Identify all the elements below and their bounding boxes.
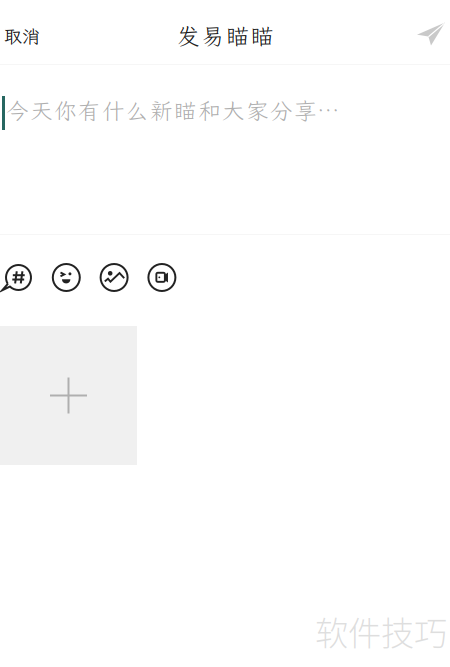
button[interactable]: Topic — [5, 264, 32, 291]
button[interactable]: Video — [148, 264, 175, 291]
staticText: 取消 — [4, 24, 40, 48]
staticText: 软件技巧 — [315, 607, 447, 655]
button[interactable]: Send — [405, 0, 445, 63]
staticText: 今天你有什么新瞄和大家分享？ — [6, 96, 338, 125]
staticText: 发易瞄瞄 — [177, 21, 273, 51]
button[interactable]: 取消 — [4, 2, 40, 62]
button[interactable]: Photos — [101, 264, 128, 291]
button[interactable]: Add photo — [0, 326, 137, 465]
button[interactable]: Emoji — [53, 264, 80, 291]
button[interactable]: Message — [0, 65, 450, 234]
